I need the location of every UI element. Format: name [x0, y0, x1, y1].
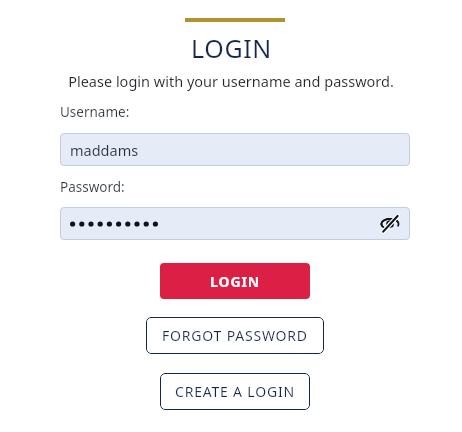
- staticText: LOGIN: [191, 31, 272, 65]
- button[interactable]: Show password: [60, 207, 410, 240]
- staticText: FORGOT PASSWORD: [162, 326, 308, 345]
- staticText: maddams: [70, 140, 139, 160]
- button[interactable]: CREATE A LOGIN: [160, 373, 310, 410]
- button[interactable]: maddams: [60, 133, 410, 166]
- button[interactable]: Show password: [374, 208, 406, 240]
- staticText: Password:: [60, 178, 125, 196]
- staticText: Please login with your username and pass…: [68, 71, 394, 91]
- staticText: Username:: [60, 103, 130, 121]
- staticText: CREATE A LOGIN: [175, 382, 295, 401]
- button[interactable]: FORGOT PASSWORD: [146, 317, 324, 354]
- staticText: LOGIN: [210, 272, 261, 291]
- button[interactable]: LOGIN: [160, 263, 310, 299]
